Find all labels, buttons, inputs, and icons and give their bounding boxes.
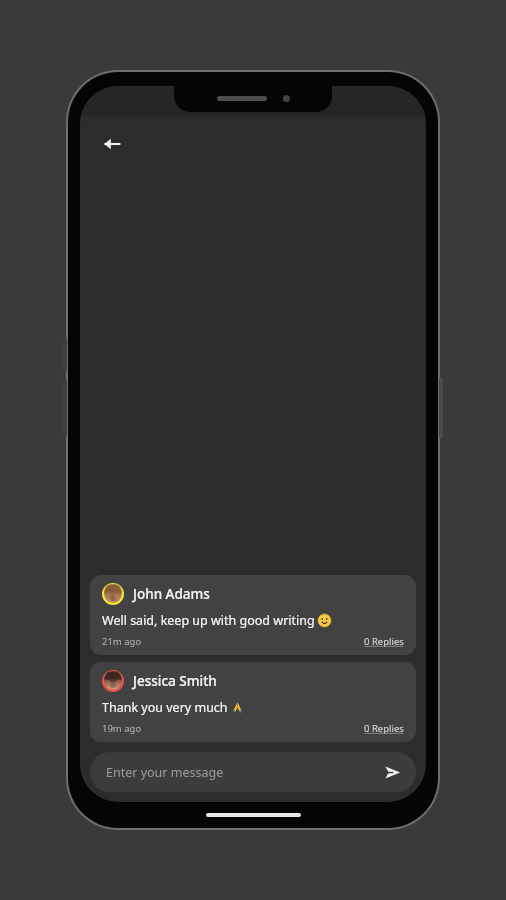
staticText: Jessica Smith bbox=[133, 672, 217, 690]
staticText: Well said, keep up with good writing bbox=[102, 612, 318, 629]
button[interactable]: 0 Replies bbox=[364, 635, 404, 648]
button[interactable]: Send bbox=[376, 756, 408, 788]
staticText: 0 Replies bbox=[364, 722, 404, 735]
button[interactable]: Enter your message bbox=[90, 752, 416, 792]
staticText: 21m ago bbox=[102, 635, 142, 648]
staticText: 19m ago bbox=[102, 722, 142, 735]
staticText: John Adams bbox=[133, 585, 210, 603]
staticText: Enter your message bbox=[106, 764, 224, 781]
button[interactable]: 0 Replies bbox=[364, 722, 404, 735]
button[interactable]: Jessica Smith bbox=[90, 662, 416, 742]
staticText: Thank you very much bbox=[102, 699, 231, 716]
button[interactable]: Back bbox=[92, 124, 132, 164]
button[interactable]: John Adams bbox=[90, 575, 416, 655]
staticText: 0 Replies bbox=[364, 635, 404, 648]
